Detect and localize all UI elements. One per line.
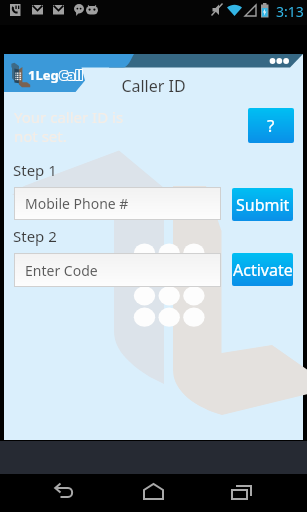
staticText: Call [59,66,83,84]
staticText: 3:13 [276,2,304,21]
staticText: Mobile Phone # [25,194,129,213]
staticText: Step 2 [13,226,57,246]
staticText: Enter Code [25,261,98,280]
staticText: Step 1 [13,160,57,180]
button[interactable]: Home [128,474,179,512]
button[interactable]: Activate [232,253,293,286]
staticText: Submit [236,194,290,216]
button[interactable]: Mobile Phone # [15,188,220,219]
button[interactable]: Recent apps [217,474,268,512]
button[interactable]: Back [39,474,90,512]
button[interactable]: Submit [232,188,293,221]
staticText: 1Leg [28,66,59,84]
staticText: Caller ID [4,75,303,97]
button[interactable]: Enter Code [15,254,220,286]
staticText: Activate [233,259,293,281]
staticText: Your caller ID is not set. [14,107,124,146]
button[interactable]: ? [248,108,294,143]
staticText: ? [267,114,275,137]
staticText: Call [59,66,83,84]
